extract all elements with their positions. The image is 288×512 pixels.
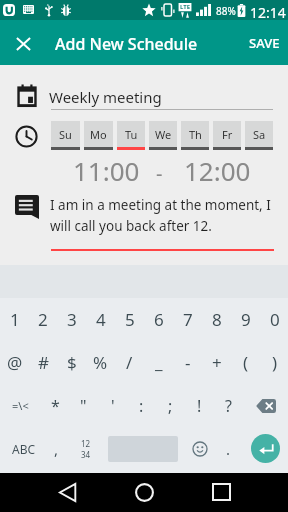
button[interactable]: Mo (84, 121, 113, 150)
button[interactable]: Fr (213, 121, 241, 150)
button[interactable]: Sa (245, 121, 273, 150)
staticText: We (155, 127, 172, 142)
staticText: 5 (125, 308, 135, 331)
staticText: % (93, 351, 108, 374)
button[interactable]: Numbers (71, 427, 100, 470)
staticText: Weekly meeting (49, 87, 162, 107)
button[interactable]: ! (185, 384, 214, 427)
button[interactable]: Tu (117, 121, 145, 150)
button[interactable]: 4 (85, 298, 114, 341)
button[interactable]: Enter (243, 427, 288, 470)
staticText: LTE (180, 3, 191, 11)
button[interactable]: ' (98, 384, 127, 427)
staticText: ) (272, 351, 278, 374)
button[interactable]: : (127, 384, 156, 427)
staticText: =\< (12, 398, 29, 413)
button[interactable]: # (28, 341, 56, 384)
button[interactable]: " (69, 384, 98, 427)
button[interactable]: @ (0, 341, 28, 384)
staticText: Add New Schedule (55, 33, 198, 55)
button[interactable]: . (214, 427, 243, 470)
staticText: @ (7, 351, 23, 374)
staticText: # (38, 351, 49, 374)
staticText: 8 (212, 308, 222, 331)
button[interactable]: $ (56, 341, 85, 384)
button[interactable]: Close (1, 21, 46, 66)
button[interactable]: 8 (201, 298, 230, 341)
button[interactable]: ) (259, 341, 288, 384)
button[interactable]: / (114, 341, 143, 384)
button[interactable]: + (201, 341, 230, 384)
staticText: ; (168, 395, 173, 417)
button[interactable]: Th (181, 121, 209, 150)
staticText: I am in a meeting at the moment, I will … (50, 196, 278, 235)
button[interactable]: ( (230, 341, 259, 384)
button[interactable]: We (149, 121, 177, 150)
staticText: 6 (154, 308, 164, 331)
button[interactable]: 3 (56, 298, 85, 341)
staticText: : (139, 395, 144, 417)
button[interactable]: * (41, 384, 69, 427)
button[interactable]: 5 (114, 298, 143, 341)
button[interactable]: SAVE (241, 20, 288, 65)
staticText: 88% (216, 4, 236, 18)
button[interactable]: Emoji (186, 427, 214, 470)
button[interactable]: ? (214, 384, 243, 427)
staticText: ABC (12, 441, 36, 457)
button[interactable]: Home (125, 473, 163, 511)
button[interactable]: , (41, 427, 71, 470)
button[interactable]: 2 (28, 298, 56, 341)
staticText: 34 (81, 449, 91, 460)
staticText: 12:00 (184, 153, 251, 188)
button[interactable]: 7 (172, 298, 201, 341)
button[interactable]: ; (156, 384, 185, 427)
staticText: ! (197, 395, 202, 417)
button[interactable]: 9 (230, 298, 259, 341)
staticText: 9 (241, 308, 251, 331)
button[interactable]: 6 (143, 298, 172, 341)
staticText: 7 (183, 308, 193, 331)
staticText: Th (189, 127, 202, 142)
button[interactable]: _ (143, 341, 172, 384)
staticText: Su (59, 127, 72, 142)
button[interactable]: - (172, 341, 201, 384)
staticText: 12 (81, 438, 91, 449)
staticText: Fr (222, 127, 233, 142)
button[interactable]: % (85, 341, 114, 384)
staticText: . (226, 439, 231, 459)
staticText: " (80, 395, 87, 417)
staticText: + (212, 351, 222, 374)
button[interactable]: ABC (0, 427, 41, 470)
button[interactable]: Backspace (243, 384, 288, 427)
staticText: 2 (38, 308, 48, 331)
button[interactable]: 0 (259, 298, 288, 341)
staticText: 0 (270, 308, 280, 331)
staticText: - (185, 351, 191, 374)
staticText: Mo (90, 127, 107, 142)
staticText: 4 (96, 308, 106, 331)
button[interactable]: 1 (0, 298, 28, 341)
staticText: * (51, 395, 60, 417)
staticText: , (54, 439, 59, 459)
staticText: 3 (67, 308, 77, 331)
staticText: ? (225, 395, 232, 417)
button[interactable]: =\< (0, 384, 41, 427)
staticText: 1 (10, 308, 20, 331)
staticText: Sa (253, 127, 266, 142)
staticText: SAVE (249, 34, 280, 52)
button[interactable]: Recent apps (202, 473, 240, 511)
staticText: 11:00 (73, 153, 140, 188)
staticText: Tu (125, 127, 138, 142)
staticText: - (156, 160, 163, 187)
staticText: _ (155, 351, 163, 374)
button[interactable]: Space (100, 427, 186, 470)
staticText: ( (243, 351, 249, 374)
staticText: 12:14 (250, 3, 286, 22)
staticText: $ (67, 351, 77, 374)
staticText: ' (111, 395, 115, 417)
button[interactable]: Su (51, 121, 80, 150)
staticText: / (126, 351, 133, 374)
button[interactable]: Back (48, 473, 86, 511)
